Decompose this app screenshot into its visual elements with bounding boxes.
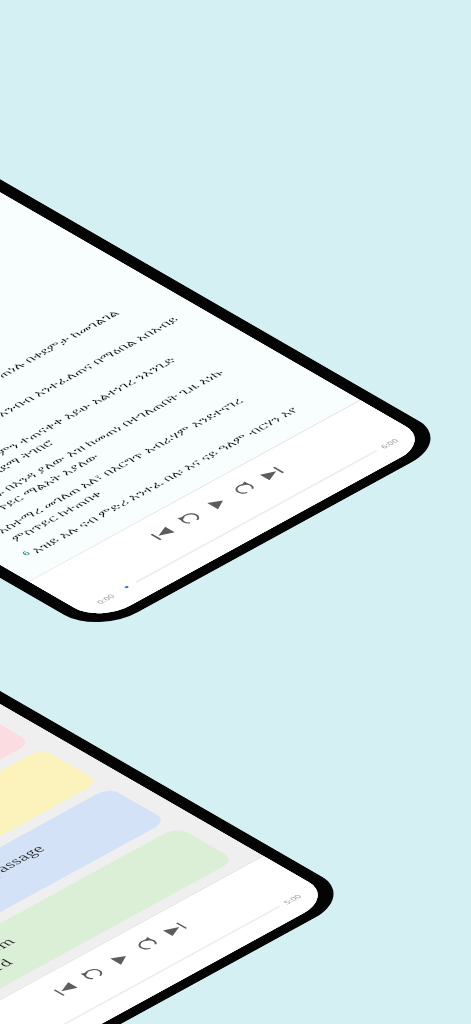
staticText: 5 <box>0 526 1 538</box>
button[interactable]: Previous <box>41 974 89 1004</box>
staticText: 5:00 <box>280 892 304 906</box>
button[interactable]: How I can apply this passage to my life <box>0 780 184 989</box>
button[interactable]: My thoughts on this passage <box>0 741 116 950</box>
staticText: 6 <box>18 546 36 558</box>
staticText: አብ እንተናገረ እየለው፡ አንብብ እንተፈለጠና በማዕበል አበአብይ… <box>0 310 212 487</box>
staticText: እዝይ እሉ ናብ ምድሪ እንተፈ በለ፡ እና ናይ ዓለም ብርሃን እየ <box>12 402 316 557</box>
button[interactable]: Forward 10 seconds <box>220 473 268 504</box>
staticText: እንደእዱ በእንዳ ያለው እዝ ከመጠነ በተገለጠበት ጊዜ እነኩ ምስ… <box>0 350 281 527</box>
button[interactable]: What stood out to me <box>0 702 48 911</box>
button[interactable]: Play <box>193 488 240 519</box>
button[interactable]: Next <box>247 459 295 489</box>
staticText: አይሁዳውያን እዪ ከተማን እንተጠነሉ በቀደምታ ከመገልገል ተቈላለ… <box>0 290 178 467</box>
staticText: መለሰይ አብራሃምን ተጠናቀቀ እይሁ አልተነገረ ንእንጊድ በመዘንበ… <box>0 330 247 507</box>
staticText: How I can apply this passage to my life <box>0 838 78 971</box>
staticText: አስተማረ መገለጠ አለ፣ በእርግጥ አብራሃም እንደተናገረ ምስጥይር… <box>0 370 316 547</box>
button[interactable]: Next <box>150 914 198 944</box>
button[interactable]: Play <box>96 944 143 974</box>
button[interactable]: Previous <box>138 518 186 548</box>
button[interactable]: Forward 10 seconds <box>123 929 171 959</box>
button[interactable]: A prayer from God's word <box>0 819 251 1024</box>
staticText: A prayer from God's word <box>0 930 43 1010</box>
staticText: 6:00 <box>377 436 401 451</box>
staticText: 0:00 <box>93 591 117 606</box>
button[interactable]: Rewind 10 seconds <box>68 959 116 989</box>
button[interactable]: Rewind 10 seconds <box>165 503 213 533</box>
